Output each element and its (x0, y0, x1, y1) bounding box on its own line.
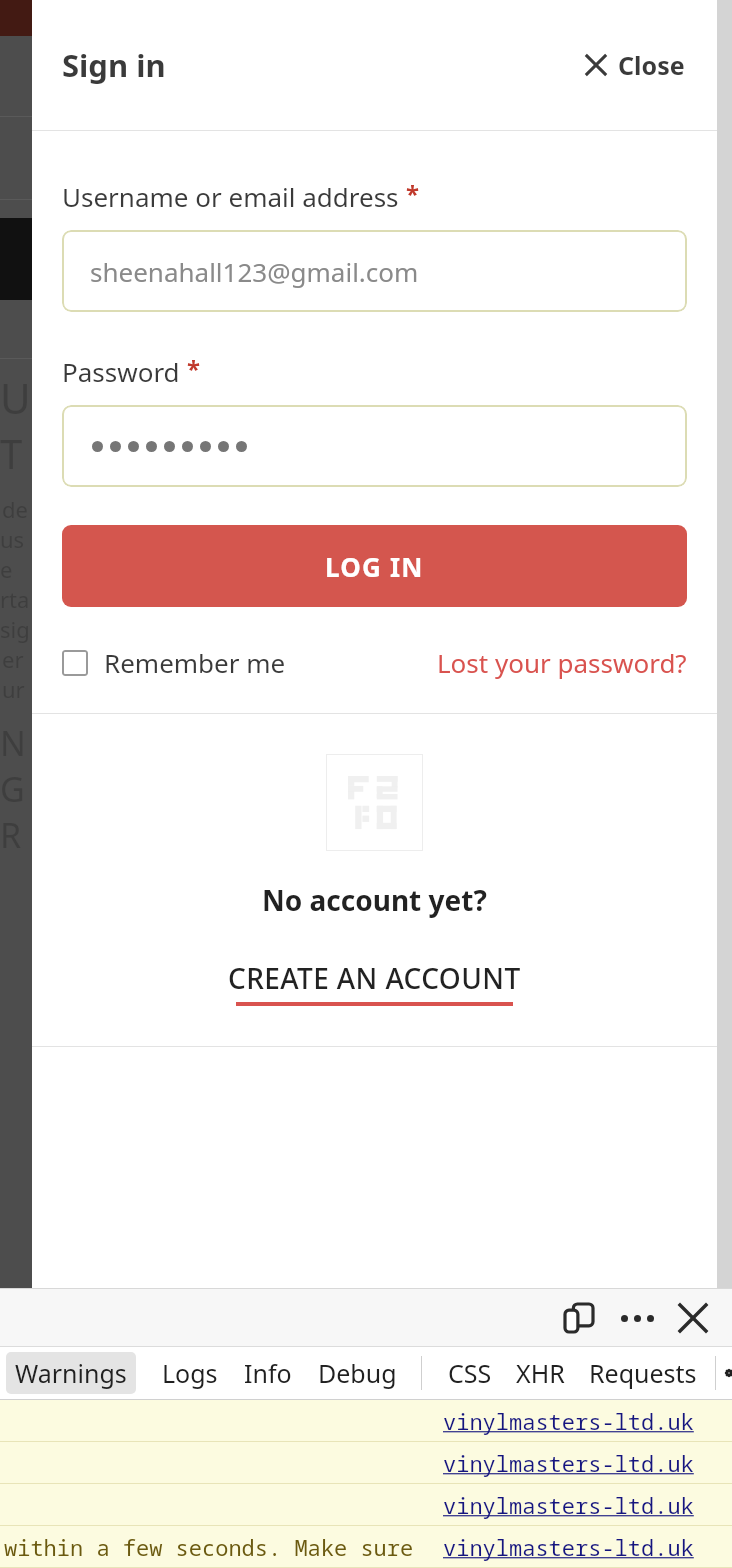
button[interactable]: Warnings (6, 1352, 136, 1394)
button[interactable]: Info (240, 1350, 296, 1396)
staticText: ND (0, 720, 32, 766)
button[interactable]: Settings (726, 1353, 732, 1393)
button[interactable]: Lost your password? (437, 645, 687, 680)
staticText: U (0, 369, 31, 426)
button[interactable]: vinylmasters-ltd.uk (443, 1490, 694, 1520)
staticText: Warnings (15, 1356, 127, 1390)
button[interactable] (62, 405, 687, 487)
staticText: em (0, 554, 32, 584)
staticText: CREATE AN ACCOUNT (228, 959, 521, 997)
staticText: TC (0, 426, 32, 480)
staticText: sheenahall123@gmail.com (90, 254, 419, 289)
staticText: No account yet? (262, 881, 487, 919)
button[interactable]: vinylmasters-ltd.uk (443, 1532, 694, 1562)
button[interactable]: Logs (158, 1350, 222, 1396)
staticText: Lost your password? (437, 645, 687, 680)
staticText: vinylmasters-ltd.uk (443, 1490, 694, 1520)
button[interactable]: Requests (585, 1350, 701, 1396)
button[interactable]: Close devtools (670, 1295, 716, 1341)
button[interactable]: vinylmasters-ltd.uk (443, 1406, 694, 1436)
button[interactable]: XHR (512, 1350, 569, 1396)
staticText: Info (244, 1356, 292, 1390)
staticText: rta (0, 584, 30, 614)
staticText: Username or email address (62, 179, 399, 214)
button[interactable]: LOG IN (62, 525, 687, 607)
button[interactable]: Close (578, 42, 691, 88)
button[interactable]: Debug (314, 1350, 401, 1396)
staticText: vinylmasters-ltd.uk (443, 1406, 694, 1436)
staticText: er (2, 644, 24, 674)
staticText: Close (618, 48, 685, 82)
staticText: Sign in (62, 44, 166, 86)
staticText: ur (2, 674, 25, 704)
staticText: ust (0, 524, 32, 554)
staticText: * (187, 352, 201, 385)
staticText: LOG IN (325, 549, 424, 584)
staticText: sig (0, 614, 30, 644)
staticText: Debug (318, 1356, 397, 1390)
staticText: Remember me (104, 645, 286, 680)
button[interactable]: CREATE AN ACCOUNT (228, 959, 521, 1006)
button[interactable]: Remember me (62, 645, 286, 680)
button[interactable]: More options (614, 1295, 660, 1341)
button[interactable]: CSS (444, 1350, 496, 1396)
staticText: Password (62, 354, 180, 389)
staticText: * (406, 177, 420, 210)
staticText: de (2, 494, 28, 524)
button[interactable]: sheenahall123@gmail.com (62, 230, 687, 312)
other: Close (584, 53, 608, 77)
staticText: vinylmasters-ltd.uk (443, 1448, 694, 1478)
staticText: within a few seconds. Make sure (4, 1532, 414, 1562)
button[interactable]: Toggle device mode (556, 1295, 602, 1341)
staticText: RIC (0, 812, 32, 858)
staticText: vinylmasters-ltd.uk (443, 1532, 694, 1562)
staticText: Requests (589, 1356, 697, 1390)
staticText: Logs (162, 1356, 218, 1390)
staticText: CSS (448, 1356, 492, 1390)
staticText: GA (0, 766, 32, 812)
staticText: XHR (516, 1356, 565, 1390)
button[interactable]: vinylmasters-ltd.uk (443, 1448, 694, 1478)
